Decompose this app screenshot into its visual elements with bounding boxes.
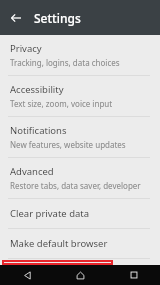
staticText: New features, website updates bbox=[10, 139, 126, 150]
button[interactable]: Accessibility bbox=[0, 76, 160, 116]
staticText: Settings bbox=[34, 10, 81, 26]
staticText: Advanced bbox=[10, 165, 54, 178]
button[interactable]: Home bbox=[54, 265, 107, 285]
button[interactable]: Privacy bbox=[0, 35, 160, 75]
staticText: Make default browser bbox=[10, 237, 108, 250]
button[interactable]: Back bbox=[6, 8, 26, 28]
staticText: Notifications bbox=[10, 124, 67, 137]
staticText: Privacy bbox=[10, 42, 42, 55]
button[interactable]: Clear private data bbox=[0, 199, 160, 228]
button[interactable]: Mozilla Firefox bbox=[2, 260, 113, 265]
staticText: Restore tabs, data saver, developer tool… bbox=[10, 180, 150, 191]
button[interactable]: Back bbox=[0, 265, 54, 285]
staticText: Tracking, logins, data choices bbox=[10, 57, 120, 68]
button[interactable]: Advanced bbox=[0, 158, 160, 198]
staticText: Text size, zoom, voice input bbox=[10, 98, 113, 109]
staticText: Accessibility bbox=[10, 83, 64, 96]
button[interactable]: Make default browser bbox=[0, 229, 160, 258]
button[interactable]: Recents bbox=[107, 265, 160, 285]
button[interactable]: Notifications bbox=[0, 117, 160, 157]
staticText: Clear private data bbox=[10, 207, 90, 220]
